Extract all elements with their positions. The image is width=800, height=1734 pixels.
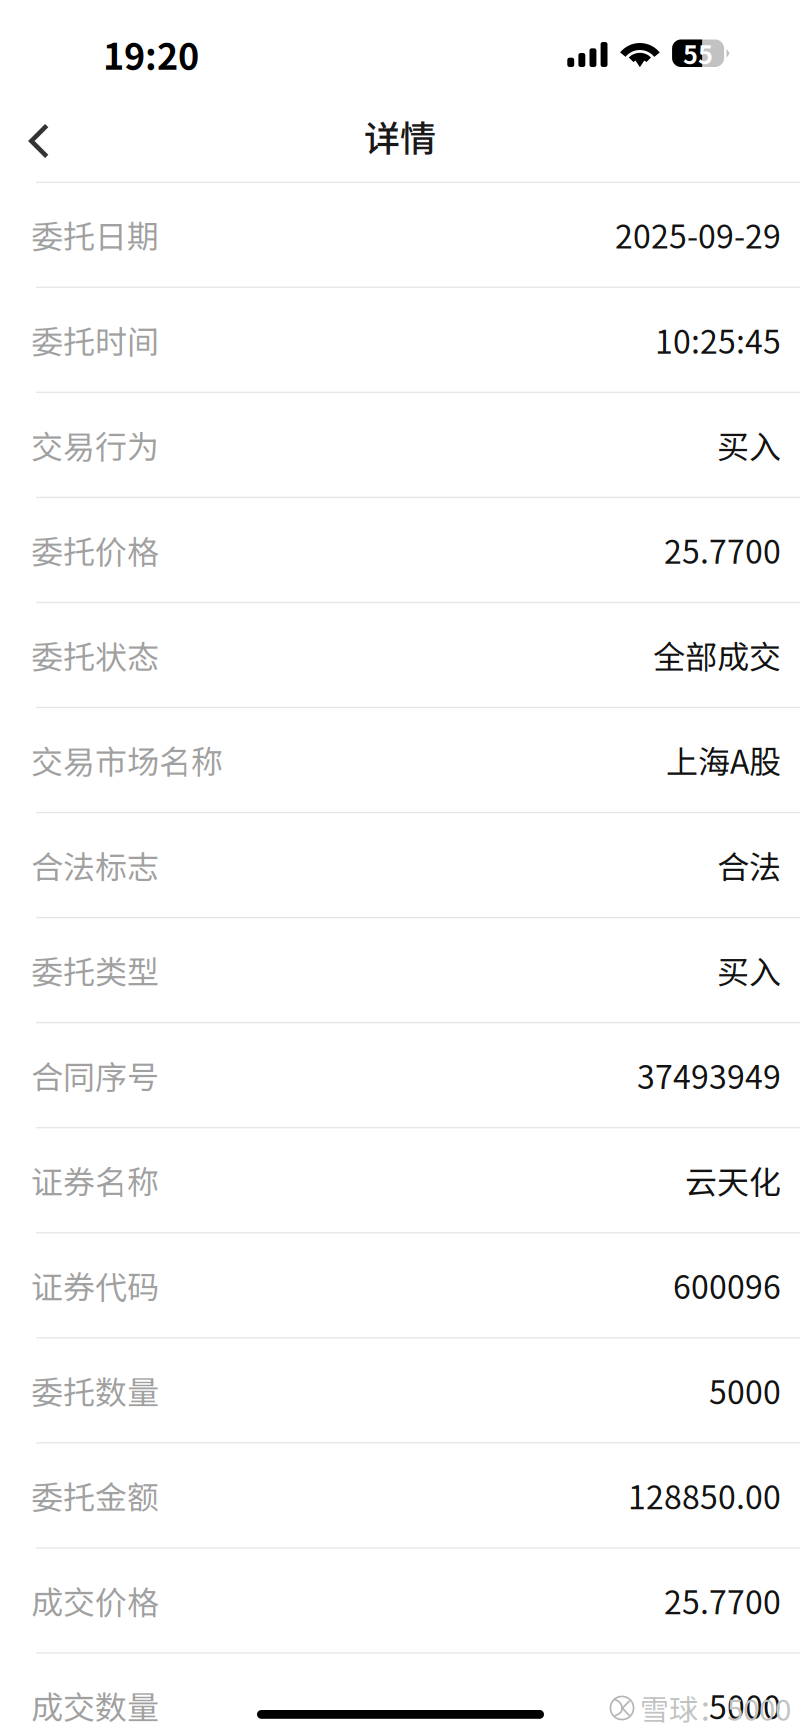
button[interactable]: Back — [7, 109, 71, 173]
staticText: 买入 — [717, 422, 781, 468]
staticText: 证券名称 — [31, 1157, 159, 1203]
staticText: 交易市场名称 — [31, 737, 223, 783]
staticText: 云天化 — [685, 1157, 781, 1203]
staticText: 成交数量 — [31, 1682, 159, 1728]
staticText: 上海A股 — [666, 737, 781, 783]
staticText: 委托价格 — [31, 527, 159, 573]
staticText: 合法 — [717, 842, 781, 888]
staticText: 雪球：5000 — [640, 1687, 791, 1729]
staticText: 2025-09-29 — [615, 211, 781, 258]
staticText: 合同序号 — [31, 1052, 159, 1098]
staticText: 委托数量 — [31, 1367, 159, 1413]
staticText: 55 — [683, 35, 713, 72]
staticText: 证券代码 — [31, 1262, 159, 1308]
staticText: 5000 — [709, 1682, 781, 1728]
staticText: 委托状态 — [31, 632, 159, 678]
staticText: 19:20 — [103, 28, 199, 80]
staticText: 合法标志 — [31, 842, 159, 888]
staticText: 交易行为 — [31, 422, 159, 468]
staticText: 5000 — [709, 1367, 781, 1413]
staticText: 128850.00 — [628, 1472, 781, 1518]
staticText: 成交价格 — [31, 1577, 159, 1623]
staticText: 全部成交 — [653, 632, 781, 678]
staticText: 600096 — [673, 1262, 781, 1308]
staticText: 25.7700 — [664, 527, 781, 573]
staticText: 25.7700 — [664, 1577, 781, 1623]
staticText: 委托类型 — [31, 947, 159, 993]
staticText: 详情 — [364, 110, 436, 162]
staticText: 委托时间 — [31, 316, 159, 363]
staticText: 委托金额 — [31, 1472, 159, 1518]
staticText: 买入 — [717, 947, 781, 993]
staticText: 委托日期 — [31, 211, 159, 258]
staticText: 10:25:45 — [655, 316, 781, 363]
staticText: 37493949 — [637, 1052, 781, 1098]
